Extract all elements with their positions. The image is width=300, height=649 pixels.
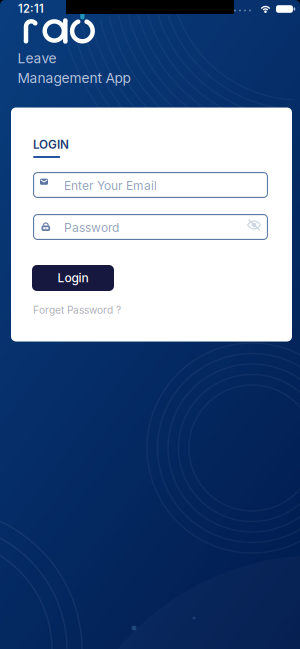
staticText: Enter Your Email (64, 178, 157, 193)
staticText: Forget Password ? (33, 304, 121, 316)
staticText: Management App (17, 70, 130, 86)
button[interactable]: Password (33, 214, 268, 240)
button[interactable]: Enter Your Email (33, 172, 268, 198)
staticText: Leave (17, 50, 56, 67)
staticText: Password (64, 220, 119, 235)
staticText: Login (57, 271, 88, 285)
button[interactable]: Login (32, 265, 114, 291)
staticText: LOGIN (33, 137, 69, 152)
button[interactable]: Show password (247, 219, 261, 230)
button[interactable]: Forget Password ? (33, 304, 121, 316)
staticText: 12:11 (18, 2, 44, 15)
